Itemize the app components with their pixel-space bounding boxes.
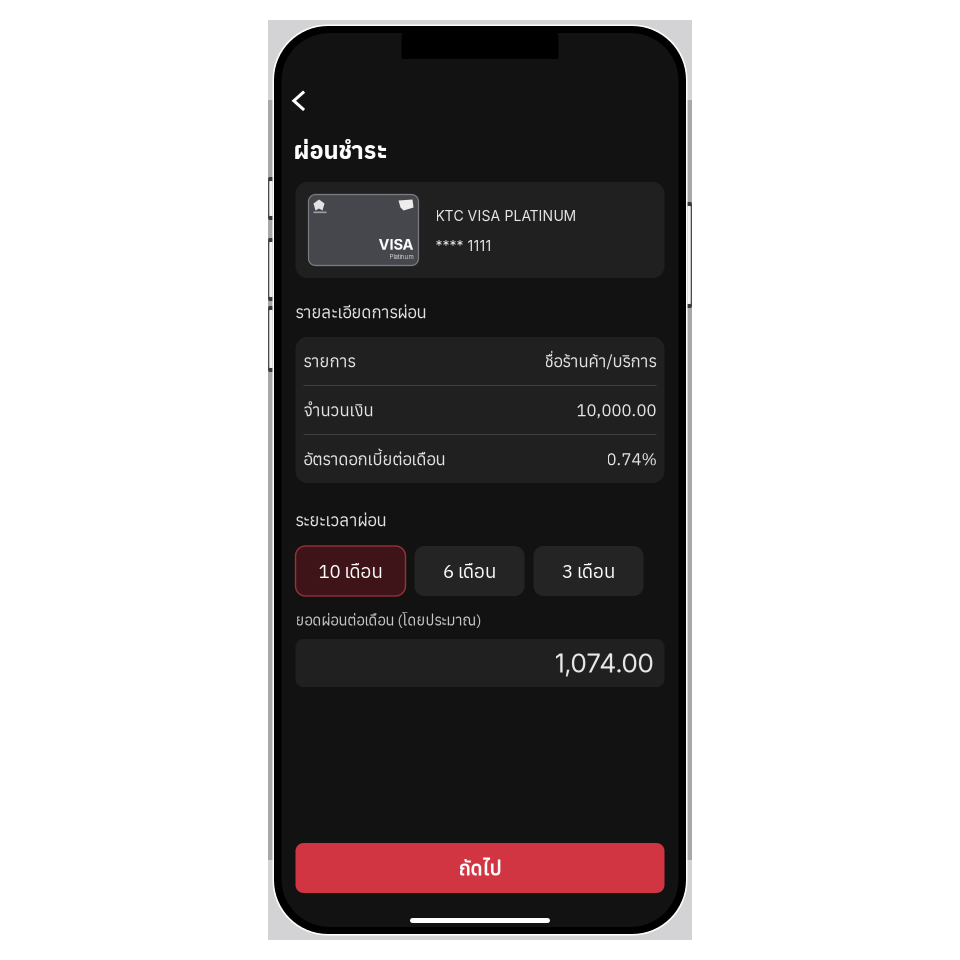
button[interactable]: 6 เดือน	[414, 546, 524, 596]
staticText: 0.74%	[606, 448, 656, 470]
staticText: VISA	[378, 235, 413, 253]
staticText: 1,074.00	[554, 647, 653, 679]
button[interactable]: Back	[291, 86, 325, 116]
staticText: รายละเอียดการผ่อน	[295, 301, 426, 323]
staticText: KTC VISA PLATINUM	[435, 207, 576, 224]
staticText: 3 เดือน	[562, 559, 615, 583]
staticText: ชื่อร้านค้า/บริการ	[544, 350, 656, 372]
button[interactable]: 10 เดือน	[295, 546, 405, 596]
staticText: จำนวนเงิน	[303, 399, 373, 421]
staticText: ระยะเวลาผ่อน	[295, 509, 386, 531]
button[interactable]: VISA	[295, 182, 664, 278]
staticText: ผ่อนชำระ	[293, 134, 387, 166]
staticText: ถัดไป	[458, 855, 501, 881]
staticText: อัตราดอกเบี้ยต่อเดือน	[303, 448, 445, 470]
button[interactable]: ถัดไป	[295, 843, 664, 893]
staticText: 10,000.00	[576, 399, 656, 421]
staticText: รายการ	[303, 350, 355, 372]
button[interactable]: 3 เดือน	[533, 546, 643, 596]
staticText: ยอดผ่อนต่อเดือน (โดยประมาณ)	[295, 610, 481, 630]
staticText: Platinum	[389, 253, 413, 260]
staticText: **** 1111	[435, 237, 491, 254]
staticText: 10 เดือน	[318, 559, 382, 583]
staticText: 6 เดือน	[443, 559, 496, 583]
